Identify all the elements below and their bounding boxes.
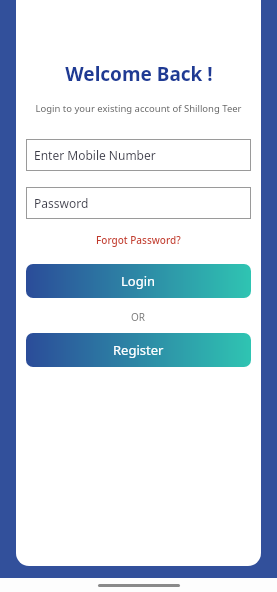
button[interactable]: Forgot Password?: [92, 231, 185, 249]
staticText: Register: [113, 341, 164, 359]
button[interactable]: Login: [26, 264, 251, 298]
staticText: Forgot Password?: [96, 233, 181, 247]
staticText: Enter Mobile Number: [34, 147, 156, 163]
staticText: Password: [34, 195, 89, 211]
button[interactable]: Password: [26, 187, 251, 219]
staticText: Login to your existing account of Shillo…: [35, 102, 242, 115]
button[interactable]: Register: [26, 333, 251, 367]
button[interactable]: Enter Mobile Number: [26, 139, 251, 171]
staticText: Welcome Back !: [65, 61, 213, 87]
staticText: Login: [121, 272, 156, 290]
staticText: OR: [131, 310, 146, 324]
